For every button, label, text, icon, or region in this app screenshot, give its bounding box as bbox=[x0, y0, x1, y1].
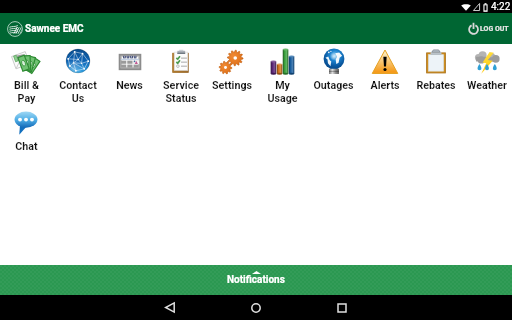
button[interactable]: Sawnee EMC bbox=[7, 21, 84, 37]
button[interactable]: Back bbox=[127, 295, 213, 320]
button[interactable]: News bbox=[104, 49, 155, 92]
button[interactable]: Recent apps bbox=[299, 295, 385, 320]
button[interactable]: Bill & Pay bbox=[0, 49, 52, 105]
staticText: Bill & Pay bbox=[14, 79, 39, 105]
staticText: Contact Us bbox=[59, 79, 97, 105]
button[interactable]: Chat bbox=[0, 110, 52, 153]
staticText: Outages bbox=[313, 79, 354, 92]
staticText: My Usage bbox=[267, 79, 298, 105]
button[interactable]: My Usage bbox=[257, 49, 308, 105]
staticText: LOG OUT bbox=[480, 25, 509, 33]
button[interactable]: Settings bbox=[206, 49, 257, 92]
staticText: Alerts bbox=[370, 79, 400, 92]
button[interactable]: Rebates bbox=[410, 49, 461, 92]
staticText: News bbox=[116, 79, 143, 92]
staticText: Weather bbox=[467, 79, 507, 92]
staticText: Service Status bbox=[163, 79, 199, 105]
staticText: Rebates bbox=[416, 79, 456, 92]
staticText: Settings bbox=[212, 79, 252, 92]
button[interactable]: Contact Us bbox=[52, 49, 104, 105]
button[interactable]: Outages bbox=[308, 49, 359, 92]
staticText: 4:22 bbox=[491, 1, 511, 13]
button[interactable]: Log out bbox=[467, 22, 509, 35]
button[interactable]: Service Status bbox=[155, 49, 206, 105]
button[interactable]: Home bbox=[213, 295, 299, 320]
button[interactable]: Notifications bbox=[0, 265, 512, 295]
staticText: Sawnee EMC bbox=[25, 23, 84, 35]
button[interactable]: Alerts bbox=[359, 49, 410, 92]
staticText: Notifications bbox=[227, 274, 285, 286]
button[interactable]: Weather bbox=[461, 49, 512, 92]
staticText: Chat bbox=[15, 140, 38, 153]
